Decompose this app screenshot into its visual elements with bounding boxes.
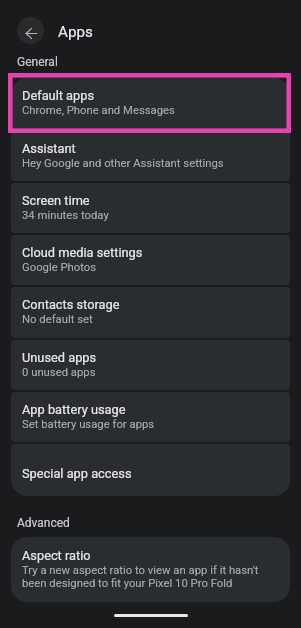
button[interactable]: Cloud media settings [11, 235, 290, 285]
staticText: Chrome, Phone and Messages [22, 104, 175, 117]
staticText: App battery usage [22, 402, 126, 417]
staticText: 34 minutes today [22, 209, 109, 222]
staticText: Aspect ratio [22, 548, 91, 563]
staticText: Apps [58, 23, 93, 41]
staticText: Try a new aspect ratio to view an app if… [22, 564, 279, 590]
button[interactable]: Screen time [11, 183, 290, 233]
staticText: Default apps [22, 88, 95, 103]
staticText: Set battery usage for apps [22, 418, 155, 431]
staticText: Screen time [22, 193, 90, 208]
button[interactable]: Default apps [11, 78, 290, 129]
button[interactable]: Contacts storage [11, 287, 290, 338]
staticText: General [17, 55, 58, 69]
button[interactable]: Aspect ratio [11, 537, 290, 602]
button[interactable]: Unused apps [11, 340, 290, 390]
button[interactable]: Back [17, 17, 44, 44]
button[interactable]: Special app access [11, 444, 290, 496]
staticText: 0 unused apps [22, 366, 96, 379]
staticText: Contacts storage [22, 297, 120, 312]
staticText: Assistant [22, 141, 76, 156]
staticText: Google Photos [22, 261, 97, 274]
staticText: No default set [22, 313, 93, 326]
staticText: Hey Google and other Assistant settings [22, 157, 224, 170]
staticText: Cloud media settings [22, 245, 143, 260]
staticText: Unused apps [22, 350, 97, 365]
staticText: Advanced [17, 516, 70, 530]
button[interactable]: Assistant [11, 131, 290, 181]
button[interactable]: App battery usage [11, 392, 290, 442]
staticText: Special app access [22, 466, 132, 481]
